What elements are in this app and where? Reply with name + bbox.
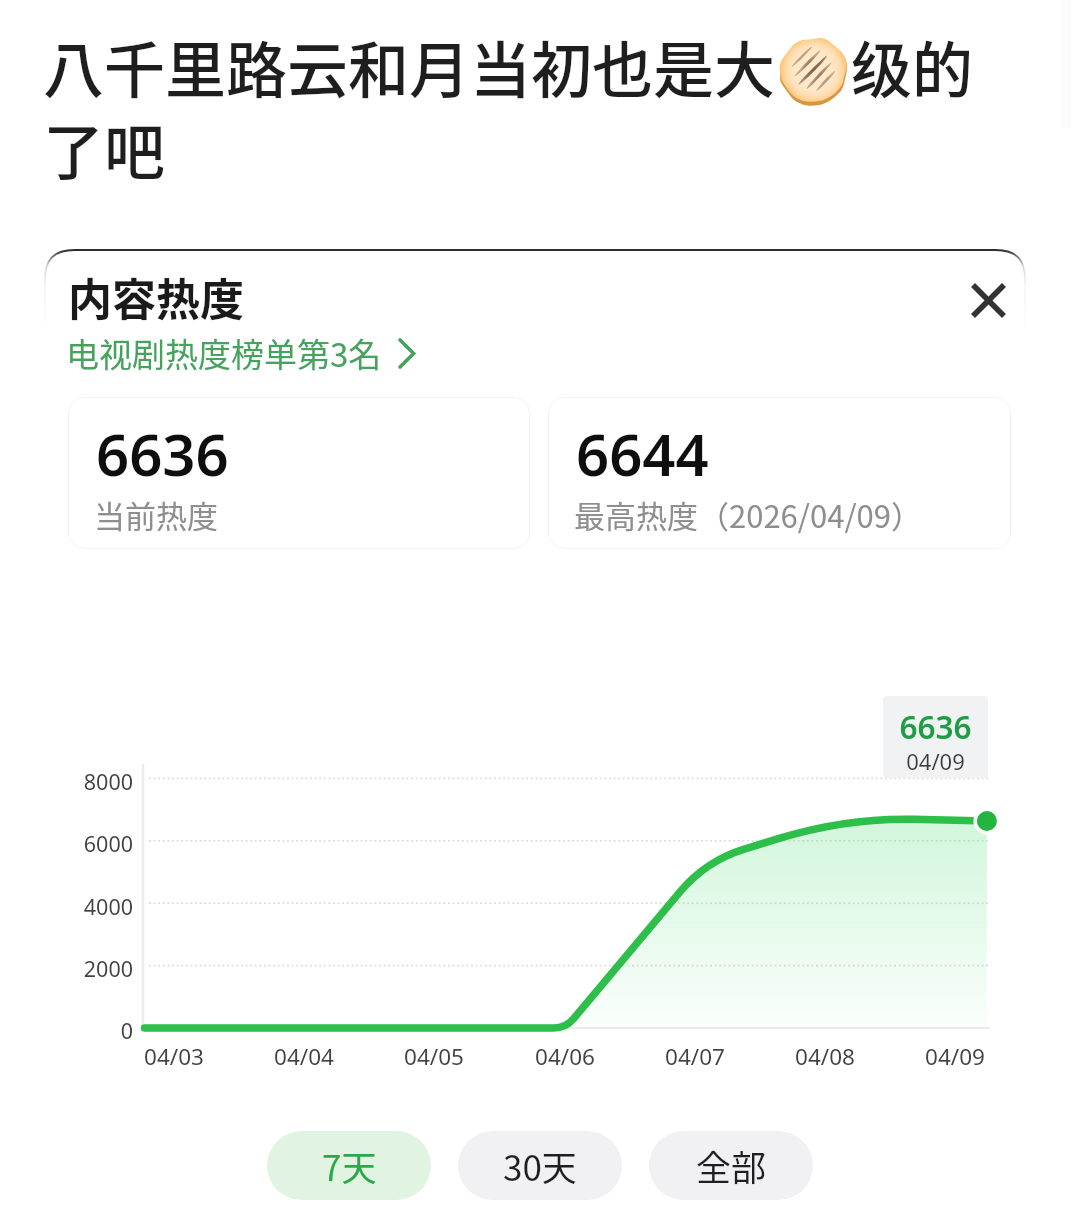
staticText: 4000	[38, 892, 133, 921]
staticText: 电视剧热度榜单第3名	[66, 329, 382, 377]
button[interactable]: 6636	[68, 397, 530, 549]
staticText: 2000	[38, 954, 133, 983]
button[interactable]: Close	[956, 268, 1020, 332]
button[interactable]: 6644	[548, 397, 1011, 549]
staticText: 30天	[503, 1140, 577, 1191]
staticText: 全部	[696, 1140, 767, 1191]
button[interactable]: 电视剧热度榜单第3名	[66, 329, 415, 377]
button[interactable]: Heat trend chart	[45, 640, 1025, 1090]
staticText: 最高热度（2026/04/09）	[574, 492, 922, 537]
staticText: 6636	[883, 705, 988, 748]
staticText: 6000	[38, 829, 133, 858]
staticText: 04/09	[895, 1041, 1015, 1072]
staticText: 6644	[576, 414, 709, 493]
staticText: 04/07	[635, 1041, 755, 1072]
staticText: 八千里路云和月当初也是大🫓级的 了吧	[43, 22, 1063, 192]
staticText: 04/09	[883, 746, 988, 776]
button[interactable]: 30天	[458, 1131, 622, 1200]
staticText: 04/03	[114, 1041, 234, 1072]
staticText: 0	[38, 1016, 133, 1045]
staticText: 04/04	[244, 1041, 364, 1072]
staticText: 04/05	[374, 1041, 494, 1072]
staticText: 04/06	[505, 1041, 625, 1072]
staticText: 04/08	[765, 1041, 885, 1072]
staticText: 8000	[38, 767, 133, 796]
staticText: 当前热度	[94, 492, 218, 537]
staticText: 内容热度	[68, 265, 244, 329]
button[interactable]: 全部	[649, 1131, 813, 1200]
staticText: 6636	[96, 414, 229, 493]
button[interactable]: 7天	[267, 1131, 431, 1200]
staticText: 7天	[322, 1140, 377, 1191]
